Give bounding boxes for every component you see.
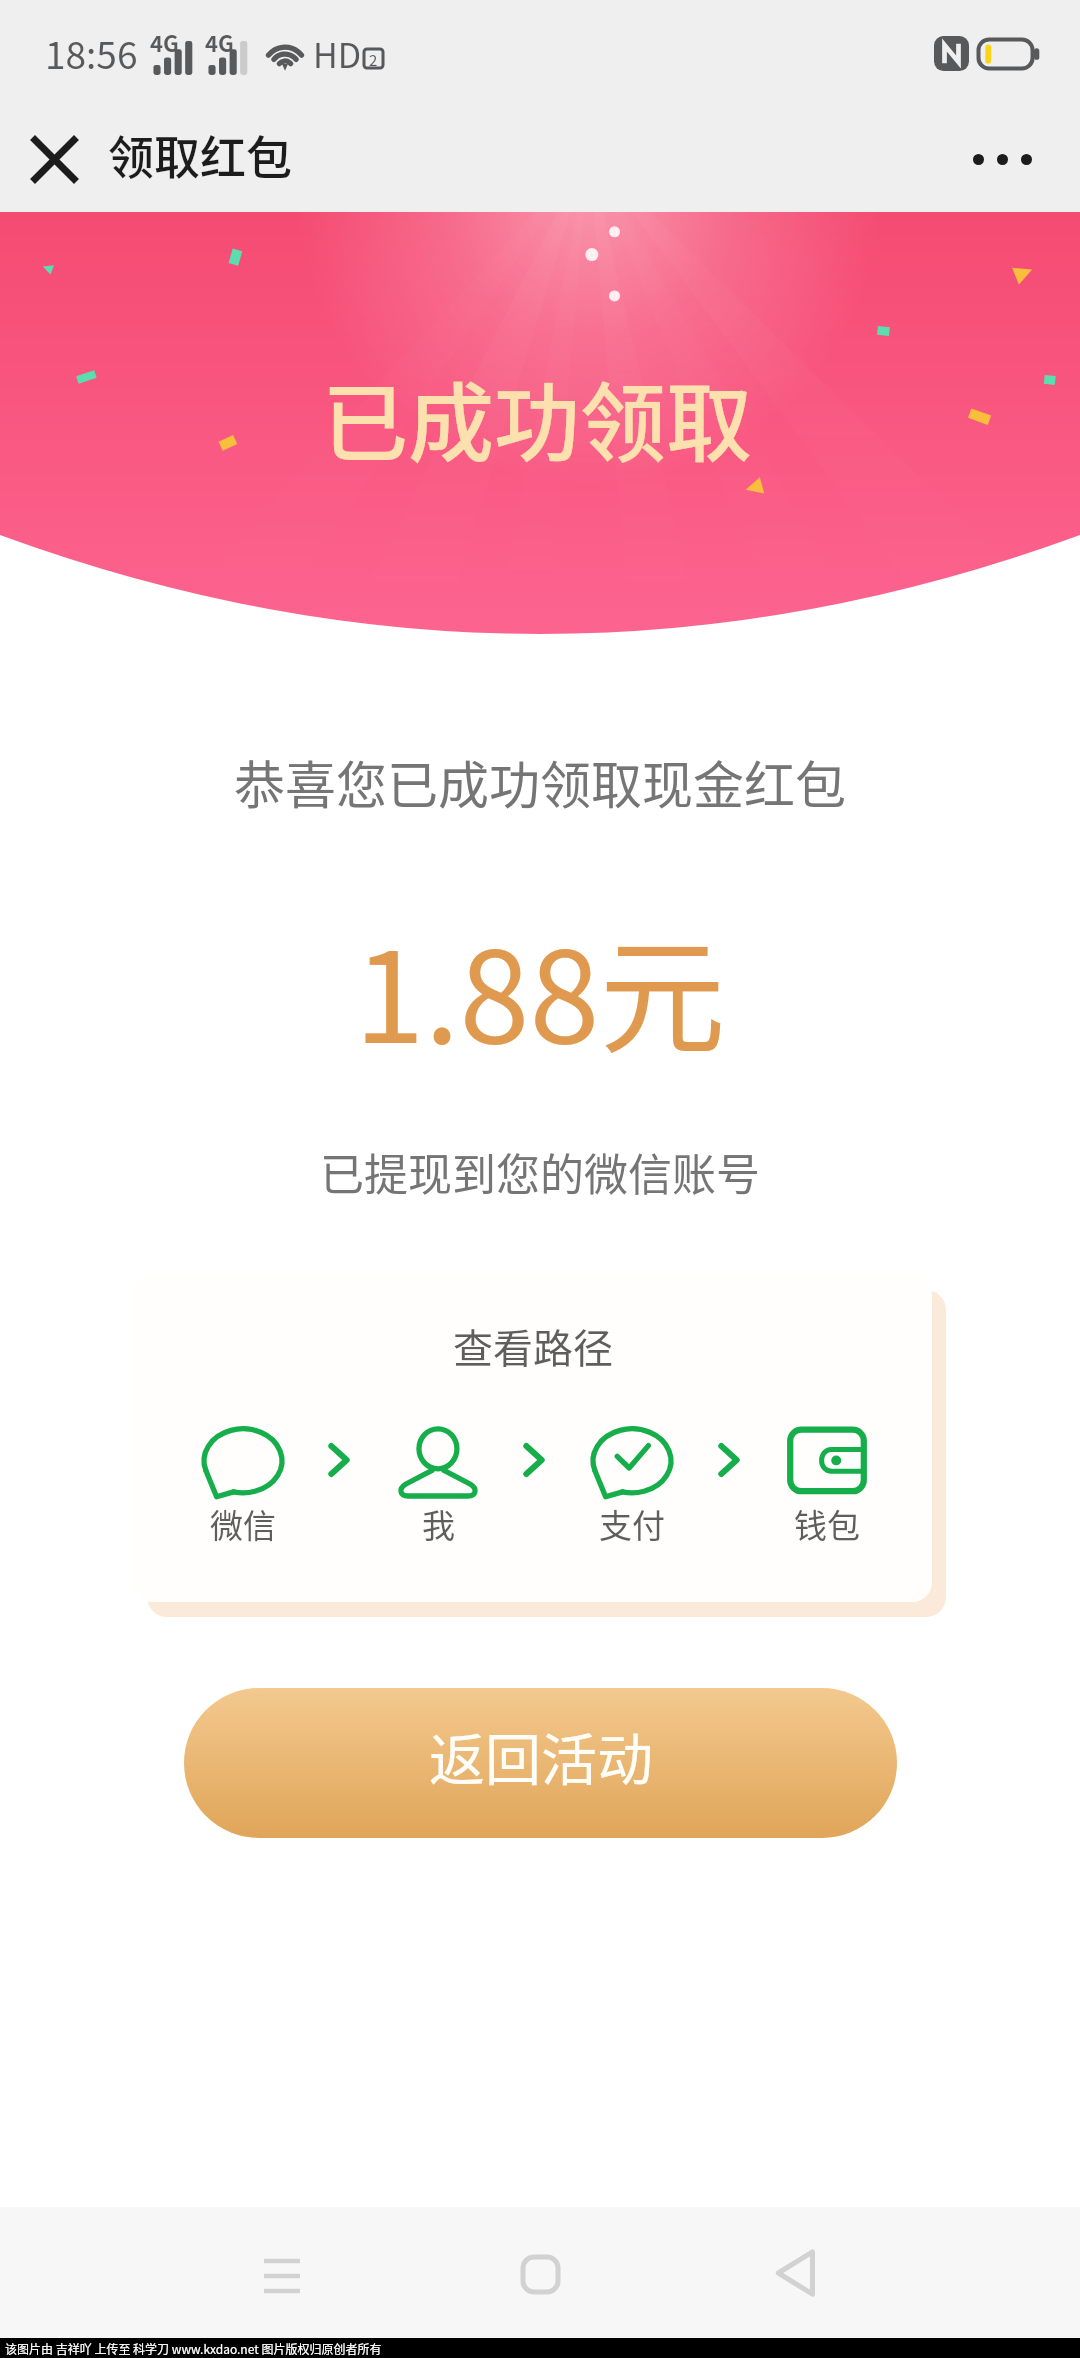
staticText: 已成功领取 [322,355,752,480]
staticText: 我 [422,1500,455,1548]
staticText: 微信 [210,1500,276,1548]
staticText: 恭喜您已成功领取现金红包 [0,745,1080,819]
staticText: 返回活动 [429,1715,653,1796]
button[interactable]: Close [16,121,92,197]
staticText: 2 [369,49,378,68]
button[interactable]: 我 [392,1418,484,1548]
button[interactable]: Back [747,2225,843,2321]
staticText: 支付 [599,1500,665,1548]
button[interactable]: More options [954,124,1050,194]
button[interactable]: Recent apps [234,2228,330,2324]
staticText: HD [313,29,362,78]
button[interactable]: 钱包 [781,1418,873,1548]
button[interactable]: 查看路径 [133,1275,932,1602]
staticText: 钱包 [794,1500,860,1548]
staticText: 4G [150,26,179,58]
button[interactable]: Home [492,2226,588,2322]
staticText: 已提现到您的微信账号 [0,1140,1080,1204]
button[interactable]: 支付 [586,1418,678,1548]
staticText: 1.88元 [0,897,1080,1079]
staticText: 该图片由 吉祥吖 上传至 科学刀 www.kxdao.net 图片版权归原创者所… [5,2340,382,2357]
button[interactable]: 微信 [197,1418,289,1548]
staticText: 领取红包 [108,121,292,188]
staticText: 4G [205,26,234,58]
staticText: 查看路径 [453,1317,613,1375]
button[interactable]: 返回活动 [184,1688,897,1838]
staticText: 18:56 [45,26,138,80]
